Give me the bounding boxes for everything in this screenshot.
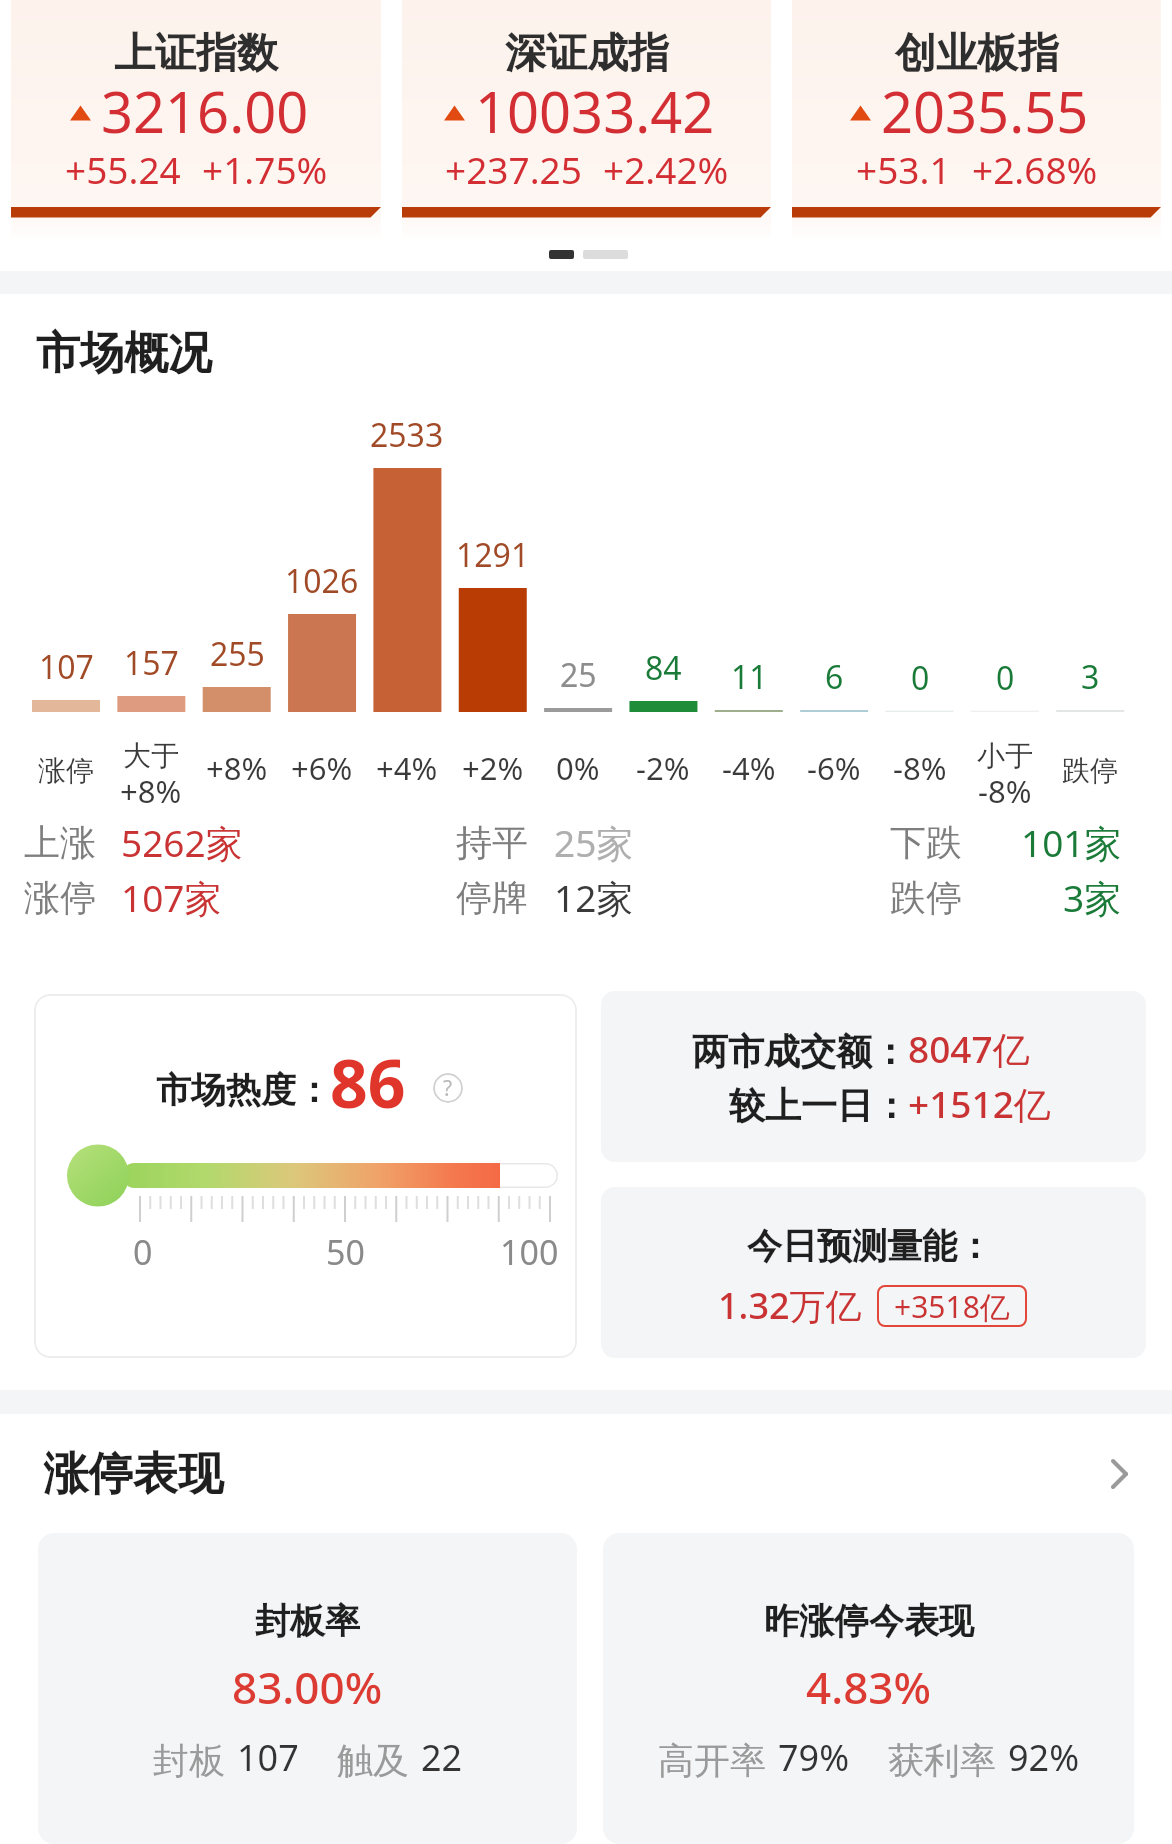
staticText: +4%	[376, 747, 438, 789]
staticText: 84	[645, 646, 682, 690]
staticText: 封板率	[255, 1599, 360, 1643]
staticText: ?	[443, 1074, 453, 1103]
staticText: 255	[210, 632, 265, 676]
staticText: +8%	[120, 770, 182, 812]
staticText: +1.75%	[202, 144, 328, 194]
staticText: 12家	[554, 872, 634, 923]
staticText: -6%	[807, 747, 861, 789]
button[interactable]: 上证指数	[11, 0, 381, 241]
staticText: 6	[825, 655, 844, 699]
staticText: 2035.55	[881, 73, 1089, 149]
staticText: 0	[996, 656, 1015, 700]
staticText: +8%	[206, 747, 268, 789]
staticText: +55.24	[65, 144, 181, 194]
button[interactable]: 封板率	[38, 1533, 577, 1844]
staticText: +6%	[291, 747, 353, 789]
staticText: 1026	[285, 559, 359, 603]
staticText: 2533	[370, 413, 444, 457]
staticText: 25家	[554, 817, 634, 868]
staticText: 0	[133, 1229, 153, 1275]
staticText: +2.68%	[972, 144, 1098, 194]
staticText: 101家	[1021, 817, 1122, 868]
staticText: 107	[39, 645, 94, 689]
other: 查看更多	[1098, 1457, 1132, 1491]
staticText: 3	[1081, 655, 1100, 699]
staticText: 封板	[153, 1738, 225, 1783]
staticText: +53.1	[856, 144, 951, 194]
staticText: 今日预测量能：	[747, 1224, 992, 1268]
staticText: 创业板指	[895, 28, 1059, 80]
staticText: 50	[326, 1229, 365, 1275]
button[interactable]: 创业板指	[792, 0, 1161, 241]
staticText: 79%	[778, 1733, 850, 1782]
staticText: +1512亿	[908, 1078, 1051, 1129]
staticText: 小于	[977, 738, 1033, 773]
button[interactable]: 深证成指	[402, 0, 771, 241]
staticText: 市场概况	[36, 326, 212, 381]
staticText: 22	[421, 1733, 463, 1782]
staticText: 停牌	[456, 875, 528, 920]
staticText: 0%	[556, 747, 600, 789]
staticText: 86	[330, 1037, 406, 1127]
staticText: 两市成交额：	[692, 1029, 908, 1074]
staticText: 获利率	[888, 1738, 996, 1783]
staticText: 跌停	[1062, 753, 1118, 788]
staticText: 8047亿	[908, 1023, 1030, 1074]
button[interactable]: 今日预测量能：	[601, 1187, 1146, 1358]
staticText: 高开率	[658, 1738, 766, 1783]
staticText: 涨停表现	[43, 1446, 223, 1503]
staticText: 83.00%	[232, 1657, 383, 1717]
staticText: 100	[500, 1229, 559, 1275]
button[interactable]: 市场热度：	[34, 994, 577, 1358]
staticText: 107家	[121, 872, 222, 923]
staticText: 10033.42	[475, 73, 715, 149]
staticText: 深证成指	[505, 28, 669, 80]
staticText: 涨停	[38, 753, 94, 788]
staticText: 0	[911, 656, 930, 700]
button[interactable]: 涨停表现	[43, 1429, 1132, 1519]
staticText: 较上一日：	[729, 1083, 909, 1128]
staticText: 107	[237, 1733, 299, 1782]
staticText: +3518亿	[894, 1286, 1010, 1327]
staticText: 1.32万亿	[718, 1281, 862, 1330]
staticText: 下跌	[890, 820, 962, 865]
staticText: 3家	[1063, 872, 1122, 923]
staticText: +2.42%	[603, 144, 729, 194]
staticText: -8%	[893, 747, 947, 789]
staticText: -8%	[978, 770, 1032, 812]
staticText: 4.83%	[806, 1657, 931, 1717]
staticText: 昨涨停今表现	[764, 1599, 974, 1643]
staticText: 1291	[456, 533, 530, 577]
staticText: 跌停	[890, 875, 962, 920]
staticText: 大于	[123, 738, 179, 773]
staticText: 157	[124, 641, 179, 685]
staticText: 市场热度：	[156, 1068, 331, 1112]
staticText: 涨停	[24, 875, 96, 920]
staticText: 3216.00	[101, 73, 309, 149]
staticText: -2%	[636, 747, 690, 789]
staticText: 上证指数	[114, 28, 278, 80]
staticText: 上涨	[24, 820, 96, 865]
staticText: 5262家	[121, 817, 243, 868]
staticText: +2%	[462, 747, 524, 789]
button[interactable]: 两市成交额：	[601, 991, 1146, 1162]
staticText: 25	[560, 653, 597, 697]
staticText: +237.25	[445, 144, 582, 194]
staticText: -4%	[722, 747, 776, 789]
other: 市场热度说明	[433, 1073, 463, 1103]
button[interactable]: 昨涨停今表现	[603, 1533, 1134, 1844]
staticText: 11	[731, 655, 768, 699]
staticText: 触及	[337, 1738, 409, 1783]
staticText: 92%	[1008, 1733, 1080, 1782]
staticText: 持平	[456, 820, 528, 865]
